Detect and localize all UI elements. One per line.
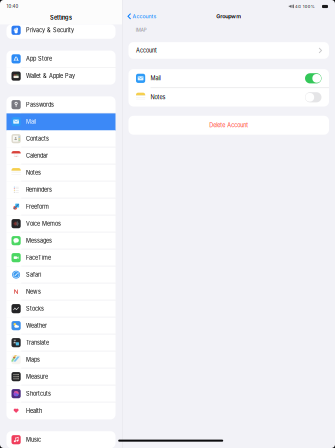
button[interactable]: Messages xyxy=(6,232,115,249)
staticText: Notes xyxy=(26,169,41,176)
button[interactable]: Safari xyxy=(6,266,115,283)
staticText: Translate xyxy=(26,339,49,346)
button[interactable]: Shortcuts xyxy=(6,385,115,402)
button[interactable]: Freeform xyxy=(6,198,115,215)
staticText: Groupwm xyxy=(216,13,241,19)
staticText: Messages xyxy=(26,237,52,244)
button[interactable]: Music xyxy=(6,431,115,448)
button[interactable]: FaceTime xyxy=(6,249,115,266)
staticText: Maps xyxy=(26,356,40,363)
button[interactable]: Calendar xyxy=(6,147,115,164)
staticText: IMAP xyxy=(136,27,147,33)
staticText: Contacts xyxy=(26,135,49,142)
button[interactable]: Contacts xyxy=(6,130,115,147)
staticText: Shortcuts xyxy=(26,390,51,397)
button[interactable]: Wallet & Apple Pay xyxy=(6,68,115,85)
staticText: Account xyxy=(136,47,157,54)
button[interactable]: Privacy & Security xyxy=(6,22,115,39)
button[interactable]: Maps xyxy=(6,351,115,368)
button[interactable]: Account xyxy=(128,42,329,59)
staticText: Notes xyxy=(150,94,165,101)
button[interactable]: Passwords xyxy=(6,96,115,113)
staticText: Calendar xyxy=(26,152,48,159)
staticText: Privacy & Security xyxy=(26,27,74,34)
button[interactable]: Stocks xyxy=(6,300,115,317)
button[interactable]: Translate xyxy=(6,334,115,351)
staticText: 10:40 xyxy=(6,4,18,9)
staticText: Music xyxy=(26,436,41,443)
button[interactable]: Health xyxy=(6,402,115,419)
staticText: 4G xyxy=(295,4,301,9)
staticText: Passwords xyxy=(26,101,54,108)
staticText: Delete Account xyxy=(209,122,248,129)
staticText: Stocks xyxy=(26,305,44,312)
staticText: Voice Memos xyxy=(26,220,61,227)
button[interactable]: Reminders xyxy=(6,181,115,198)
staticText: Health xyxy=(26,408,42,414)
staticText: FaceTime xyxy=(26,254,51,261)
button[interactable]: Weather xyxy=(6,317,115,334)
button[interactable]: Mail xyxy=(6,113,115,130)
staticText: Freeform xyxy=(26,203,49,210)
button[interactable]: News xyxy=(6,283,115,300)
staticText: Safari xyxy=(26,271,41,278)
button[interactable]: Measure xyxy=(6,368,115,385)
staticText: Accounts xyxy=(133,13,157,19)
staticText: Settings xyxy=(50,14,72,21)
staticText: Reminders xyxy=(26,186,52,193)
staticText: Mail xyxy=(150,75,160,82)
staticText: Mail xyxy=(26,118,36,125)
staticText: 100% xyxy=(303,4,315,9)
button[interactable]: App Store xyxy=(6,51,115,68)
staticText: Wallet & Apple Pay xyxy=(26,73,75,79)
button[interactable]: Notes xyxy=(6,164,115,181)
staticText: News xyxy=(26,288,41,295)
staticText: Weather xyxy=(26,322,47,329)
button[interactable]: Accounts xyxy=(122,9,157,23)
button[interactable]: Voice Memos xyxy=(6,215,115,232)
staticText: App Store xyxy=(26,55,52,62)
button[interactable]: Delete Account xyxy=(128,116,329,135)
staticText: Measure xyxy=(26,373,48,380)
